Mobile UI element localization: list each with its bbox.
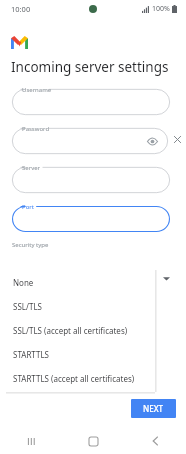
- staticText: 10:00: [11, 4, 31, 14]
- staticText: Incoming server settings: [11, 58, 169, 76]
- staticText: Port: [22, 203, 34, 211]
- staticText: 100%: [152, 4, 170, 14]
- button[interactable]: Home: [62, 428, 124, 454]
- staticText: SSL/TLS: [13, 301, 42, 312]
- button[interactable]: Server: [12, 163, 170, 193]
- button[interactable]: Back: [124, 428, 186, 454]
- staticText: Security type: [12, 241, 49, 249]
- staticText: Password: [22, 125, 50, 133]
- staticText: STARTTLS: [13, 349, 50, 360]
- button[interactable]: Recent apps: [0, 428, 62, 454]
- button[interactable]: Open security type: [160, 272, 172, 284]
- staticText: Server: [22, 164, 41, 172]
- button[interactable]: Username: [12, 85, 170, 115]
- button[interactable]: NEXT: [131, 399, 176, 418]
- staticText: NEXT: [143, 403, 164, 414]
- button[interactable]: STARTTLS: [6, 342, 155, 366]
- button[interactable]: Clear: [168, 124, 186, 154]
- button[interactable]: Show password: [146, 135, 159, 148]
- button[interactable]: SSL/TLS: [6, 294, 155, 318]
- button[interactable]: Password: [12, 124, 168, 154]
- button[interactable]: STARTTLS (accept all certificates): [6, 366, 155, 390]
- staticText: Username: [22, 86, 52, 94]
- button[interactable]: Port: [12, 202, 170, 232]
- staticText: None: [13, 277, 34, 288]
- staticText: SSL/TLS (accept all certificates): [13, 325, 128, 336]
- button[interactable]: None: [6, 270, 155, 294]
- button[interactable]: SSL/TLS (accept all certificates): [6, 318, 155, 342]
- staticText: STARTTLS (accept all certificates): [13, 373, 135, 384]
